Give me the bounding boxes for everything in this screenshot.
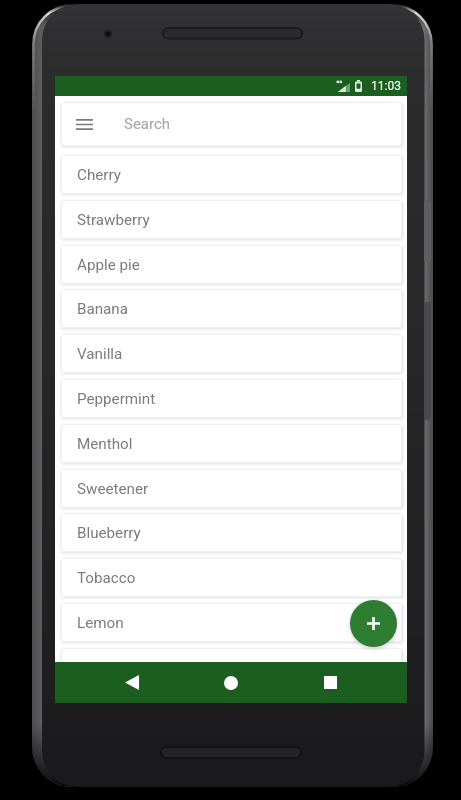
staticText: Apple pie bbox=[77, 256, 140, 274]
staticText: Sweetener bbox=[77, 480, 149, 498]
button[interactable]: Peppermint bbox=[61, 379, 402, 418]
button[interactable]: Recent apps bbox=[297, 662, 363, 703]
staticText: Strawberry bbox=[77, 211, 150, 229]
staticText: Tobacco bbox=[77, 569, 136, 587]
button[interactable]: Back bbox=[99, 662, 165, 703]
staticText: Vanilla bbox=[77, 345, 123, 363]
button[interactable]: Home bbox=[198, 662, 264, 703]
button[interactable]: Cherry bbox=[61, 155, 402, 194]
staticText: Cherry bbox=[77, 166, 121, 184]
button[interactable]: Open navigation menu bbox=[61, 102, 402, 146]
staticText: Banana bbox=[77, 300, 129, 318]
button[interactable]: Banana bbox=[61, 289, 402, 328]
staticText: Search bbox=[124, 115, 171, 133]
button[interactable]: Add bbox=[350, 600, 397, 647]
button[interactable]: Vanilla bbox=[61, 334, 402, 373]
button[interactable] bbox=[61, 648, 402, 662]
button[interactable]: Strawberry bbox=[61, 200, 402, 239]
staticText: 11:03 bbox=[371, 79, 401, 93]
button[interactable]: Apple pie bbox=[61, 245, 402, 284]
button[interactable]: Sweetener bbox=[61, 469, 402, 508]
button[interactable]: Lemon bbox=[61, 603, 402, 642]
staticText: Blueberry bbox=[77, 524, 141, 542]
staticText: Lemon bbox=[77, 614, 124, 632]
button[interactable]: Blueberry bbox=[61, 513, 402, 552]
other: Open navigation menu bbox=[76, 119, 93, 130]
button[interactable]: Tobacco bbox=[61, 558, 402, 597]
staticText: Menthol bbox=[77, 435, 133, 453]
button[interactable]: Menthol bbox=[61, 424, 402, 463]
staticText: Peppermint bbox=[77, 390, 156, 408]
